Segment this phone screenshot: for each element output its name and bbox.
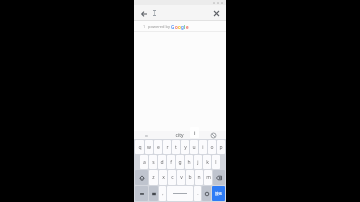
button[interactable]: Back [138,8,149,19]
staticText: i [194,129,196,137]
button[interactable]: h [185,155,193,169]
button[interactable]: Emoji [202,186,211,201]
staticText: x [162,174,165,181]
staticText: d [160,159,164,166]
button[interactable]: p [217,140,225,154]
staticText: y [184,144,187,151]
button[interactable]: Expand suggestions [209,131,218,139]
button[interactable]: Expand suggestions [200,131,226,139]
staticText: o [210,144,214,151]
button[interactable]: s [149,155,157,169]
button[interactable]: b [186,170,194,185]
staticText: r [166,144,169,151]
staticText: powered by [148,24,171,29]
staticText: z [152,174,155,181]
button[interactable]: Close [211,8,222,19]
staticText: f [170,159,172,166]
staticText: l [184,24,186,30]
staticText: 1 [143,24,146,29]
staticText: g [181,24,184,30]
button[interactable]: l [212,155,220,169]
staticText: 搜索 [215,192,222,196]
button[interactable]: . [194,186,201,201]
button[interactable]: i [199,140,207,154]
staticText: m [206,174,211,181]
staticText: u [192,144,196,151]
staticText: a [143,159,146,166]
staticText: q [138,144,142,151]
staticText: j [197,159,199,166]
button[interactable]: Search [212,186,225,201]
staticText: . [197,190,199,197]
button[interactable]: u [190,140,198,154]
staticText: p [219,144,223,151]
button[interactable]: j [194,155,202,169]
staticText: i [202,144,204,151]
button[interactable]: f [167,155,175,169]
button[interactable]: Symbols [135,186,148,201]
staticText: w [147,144,151,151]
button[interactable]: o [134,131,159,139]
button[interactable]: a [140,155,148,169]
button[interactable]: Shift [135,170,148,185]
staticText: , [162,190,164,197]
staticText: o [145,133,148,138]
button[interactable]: , [159,186,166,201]
staticText: g [178,159,182,166]
staticText: h [187,159,191,166]
button[interactable]: Backspace [213,170,225,185]
staticText: n [197,174,201,181]
staticText: s [152,159,155,166]
button[interactable]: v [177,170,185,185]
staticText: city [175,132,184,139]
staticText: G [171,24,175,30]
button[interactable]: c [168,170,176,185]
button[interactable]: d [158,155,166,169]
button[interactable]: g [176,155,184,169]
staticText: t [175,144,177,151]
button[interactable]: t [172,140,180,154]
button[interactable]: q [135,140,144,154]
button[interactable]: Switch language [149,186,158,201]
staticText: e [186,24,189,30]
button[interactable]: n [195,170,203,185]
button[interactable]: y [181,140,189,154]
staticText: e [157,144,160,151]
staticText: o [175,24,178,30]
button[interactable]: x [159,170,167,185]
staticText: l [215,159,217,166]
button[interactable]: k [203,155,211,169]
button[interactable]: city [159,131,200,139]
button[interactable]: r [163,140,171,154]
staticText: k [206,159,209,166]
button[interactable]: e [154,140,162,154]
button[interactable]: Space [167,186,193,201]
button[interactable]: w [145,140,153,154]
button[interactable]: o [208,140,216,154]
button[interactable]: m [204,170,212,185]
staticText: o [178,24,181,30]
staticText: c [171,174,174,181]
button[interactable] [152,7,211,19]
staticText: b [188,174,192,181]
staticText: v [180,174,183,181]
button[interactable]: z [149,170,158,185]
